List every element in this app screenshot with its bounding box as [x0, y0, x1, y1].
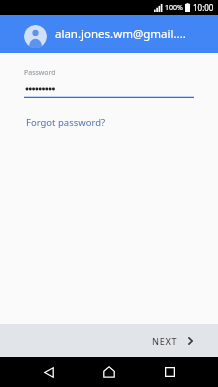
staticText: NEXT: [152, 335, 178, 347]
staticText: 100%: [165, 3, 183, 13]
button[interactable]: Recent apps: [155, 357, 185, 387]
button[interactable]: Home: [93, 357, 125, 387]
staticText: alan.jones.wm@gmail....: [55, 26, 186, 42]
staticText: 10:00: [193, 2, 214, 13]
button[interactable]: alan.jones.wm@gmail....: [0, 15, 218, 53]
button[interactable]: Back: [33, 357, 64, 387]
button[interactable]: Forgot password?: [19, 111, 113, 134]
staticText: Forgot password?: [26, 116, 106, 129]
button[interactable]: NEXT: [140, 329, 218, 353]
button[interactable]: Password field: [0, 68, 218, 99]
staticText: Password: [24, 68, 56, 78]
